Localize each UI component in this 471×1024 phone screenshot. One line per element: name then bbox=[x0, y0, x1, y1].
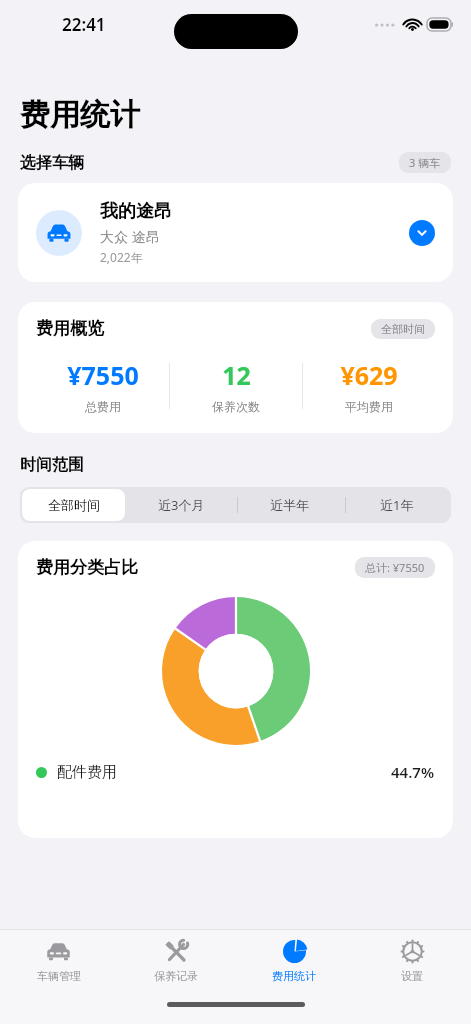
button[interactable]: 展开车辆列表 bbox=[409, 220, 435, 246]
staticText: 3 辆车 bbox=[409, 155, 441, 170]
button[interactable]: 全部时间 bbox=[22, 489, 125, 521]
button[interactable]: 我的途昂 bbox=[18, 183, 453, 282]
button[interactable]: 配件费用 bbox=[36, 762, 435, 782]
button[interactable]: 近半年 bbox=[237, 489, 341, 521]
staticText: 近半年 bbox=[270, 497, 309, 513]
staticText: 总计: ¥7550 bbox=[365, 560, 425, 575]
staticText: 配件费用 bbox=[57, 763, 117, 782]
button[interactable]: 保养记录 bbox=[117, 930, 235, 992]
staticText: 我的途昂 bbox=[100, 200, 172, 223]
staticText: 总费用 bbox=[85, 399, 121, 414]
staticText: 近3个月 bbox=[158, 496, 205, 514]
button[interactable]: 近3个月 bbox=[129, 489, 233, 521]
staticText: 12 bbox=[222, 358, 251, 392]
staticText: 保养次数 bbox=[212, 399, 260, 414]
staticText: 费用统计 bbox=[272, 969, 316, 983]
staticText: 费用分类占比 bbox=[36, 557, 138, 578]
staticText: 费用概览 bbox=[36, 318, 104, 339]
staticText: 费用统计 bbox=[20, 96, 140, 134]
staticText: 时间范围 bbox=[20, 455, 84, 475]
staticText: 平均费用 bbox=[345, 399, 393, 414]
staticText: 车辆管理 bbox=[37, 969, 81, 983]
staticText: 2,022年 bbox=[100, 249, 143, 265]
staticText: 大众 途昂 bbox=[100, 227, 160, 246]
staticText: 近1年 bbox=[380, 496, 414, 514]
staticText: 设置 bbox=[401, 969, 423, 983]
button[interactable]: 车辆管理 bbox=[0, 930, 117, 992]
staticText: 44.7% bbox=[391, 762, 435, 782]
button[interactable]: 设置 bbox=[353, 930, 471, 992]
staticText: 22:41 bbox=[62, 13, 106, 36]
staticText: 保养记录 bbox=[154, 969, 198, 983]
staticText: 选择车辆 bbox=[20, 153, 84, 173]
staticText: 全部时间 bbox=[381, 322, 425, 336]
staticText: 全部时间 bbox=[48, 497, 100, 513]
button[interactable]: 近1年 bbox=[345, 489, 449, 521]
staticText: ¥629 bbox=[340, 358, 398, 392]
button[interactable]: 费用统计 bbox=[235, 930, 353, 992]
staticText: ¥7550 bbox=[67, 358, 139, 392]
